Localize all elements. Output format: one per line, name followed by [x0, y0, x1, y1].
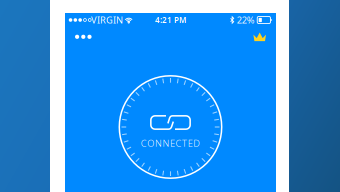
button[interactable]: Go Premium [248, 28, 271, 45]
staticText: 4:21 PM [155, 15, 186, 25]
button[interactable]: Connected, tap to disconnect [118, 75, 222, 179]
staticText: VIRGIN [91, 14, 123, 26]
button[interactable]: Menu [70, 29, 97, 45]
staticText: 22% [237, 14, 255, 26]
staticText: CONNECTED [141, 137, 200, 149]
